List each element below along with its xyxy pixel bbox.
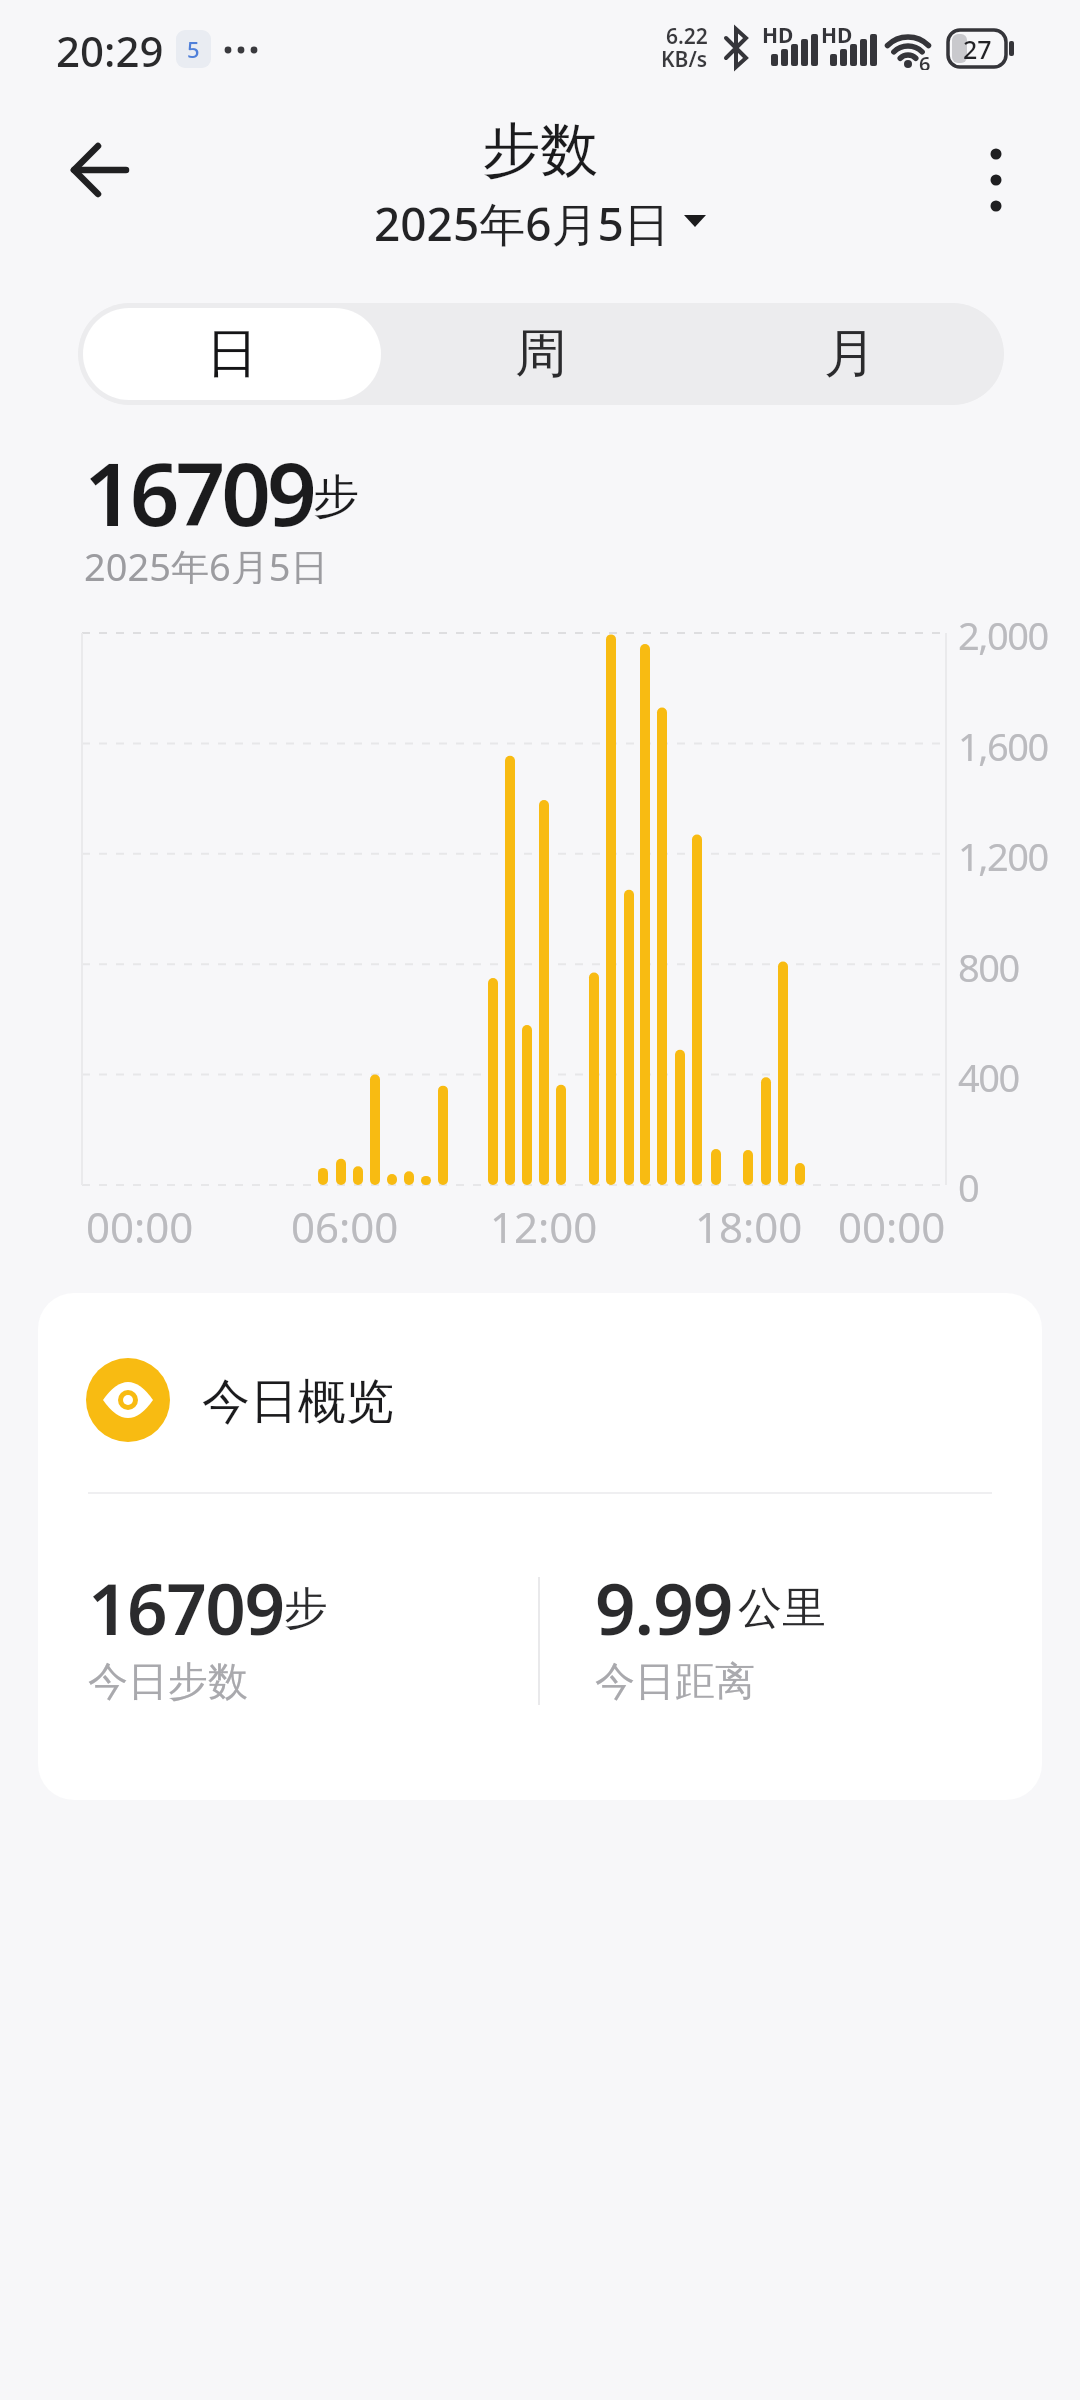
staticText: 今日概览 (202, 1372, 394, 1428)
staticText: 1,200 (958, 830, 1048, 878)
staticText: 20:29 (56, 22, 164, 74)
staticText: 5 (187, 34, 200, 64)
staticText: 周 (515, 321, 567, 387)
staticText: 12:00 (490, 1198, 598, 1248)
button[interactable] (50, 138, 140, 202)
staticText: 16709 (88, 1559, 284, 1647)
staticText: 27 (963, 32, 992, 66)
staticText: 16709 (84, 433, 313, 545)
staticText: 06:00 (291, 1198, 399, 1248)
staticText: 今日步数 (88, 1656, 248, 1702)
staticText: 800 (958, 941, 1019, 989)
button[interactable] (38, 1293, 1042, 1800)
staticText: 步 (313, 468, 359, 526)
button[interactable]: 周 (386, 303, 695, 405)
staticText: 9.99 (595, 1559, 733, 1647)
button[interactable]: 日 (83, 308, 381, 400)
button[interactable]: 2025年6月5日 (374, 192, 706, 250)
button[interactable]: 月 (695, 303, 1004, 405)
staticText: 6 (919, 50, 931, 70)
staticText: 00:00 (86, 1198, 194, 1248)
staticText: HD (821, 21, 853, 45)
staticText: 400 (958, 1051, 1019, 1099)
staticText: 0 (958, 1161, 979, 1209)
staticText: 00:00 (838, 1198, 946, 1248)
staticText: 日 (206, 321, 258, 387)
button[interactable] (966, 134, 1026, 226)
staticText: 6.22 (666, 22, 708, 44)
staticText: HD (762, 21, 794, 45)
staticText: 18:00 (695, 1198, 803, 1248)
staticText: 1,600 (958, 720, 1048, 768)
staticText: 公里 (738, 1581, 826, 1635)
staticText: 2025年6月5日 (374, 192, 670, 250)
staticText: 月 (824, 321, 876, 387)
staticText: KB/s (661, 45, 708, 67)
staticText: 步数 (482, 114, 598, 187)
staticText: 2,000 (958, 609, 1048, 657)
staticText: 步 (284, 1581, 328, 1635)
staticText: 今日距离 (595, 1656, 755, 1702)
staticText: 2025年6月5日 (84, 540, 329, 584)
